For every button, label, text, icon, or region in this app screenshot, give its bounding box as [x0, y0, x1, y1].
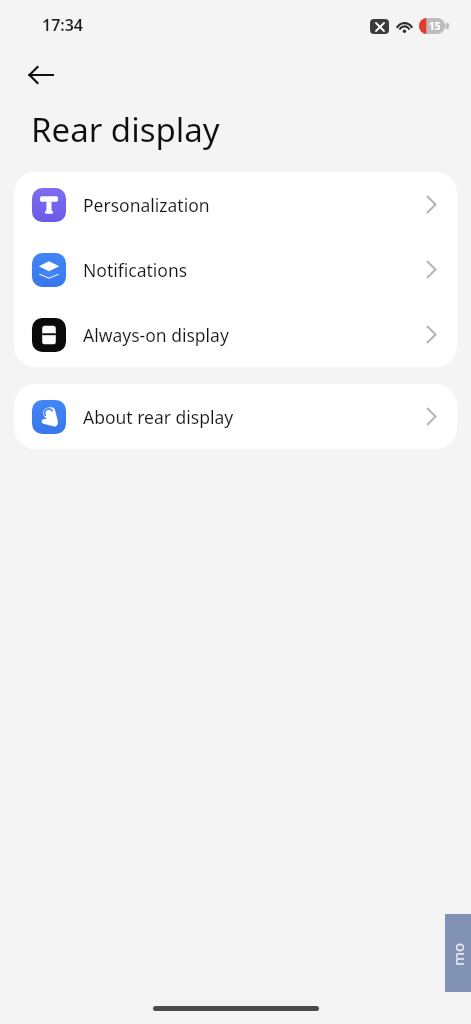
- button[interactable]: Back: [20, 54, 62, 96]
- button[interactable]: About rear display: [14, 384, 457, 449]
- staticText: 15: [429, 19, 441, 33]
- staticText: About rear display: [83, 405, 234, 429]
- staticText: Rear display: [31, 107, 220, 152]
- button[interactable]: Personalization: [14, 172, 457, 237]
- staticText: Personalization: [83, 193, 210, 217]
- button[interactable]: Notifications: [14, 237, 457, 302]
- staticText: 17:34: [42, 14, 84, 36]
- staticText: Always-on display: [83, 323, 229, 347]
- button[interactable]: Always-on display: [14, 302, 457, 367]
- staticText: mobile.ir: [448, 940, 468, 966]
- staticText: Notifications: [83, 258, 188, 282]
